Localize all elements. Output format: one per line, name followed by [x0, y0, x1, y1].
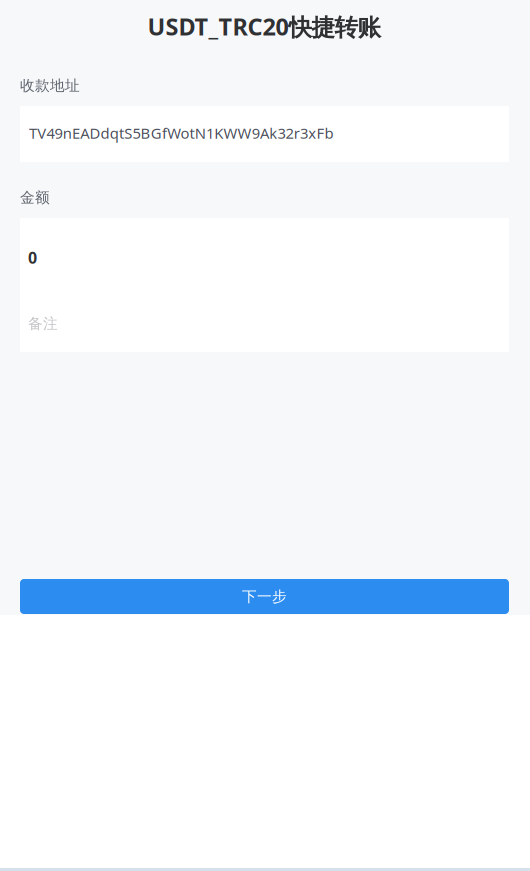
staticText: 0 — [28, 247, 37, 268]
staticText: 下一步 — [242, 587, 287, 606]
button[interactable]: 0 — [20, 218, 509, 352]
staticText: TV49nEADdqtS5BGfWotN1KWW9Ak32r3xFb — [29, 123, 334, 143]
staticText: USDT_TRC20快捷转账 — [147, 10, 380, 43]
staticText: 金额 — [20, 188, 50, 207]
staticText: 备注 — [28, 314, 58, 333]
button[interactable]: TV49nEADdqtS5BGfWotN1KWW9Ak32r3xFb — [20, 106, 509, 162]
button[interactable]: 下一步 — [20, 579, 509, 614]
staticText: 收款地址 — [20, 76, 80, 95]
